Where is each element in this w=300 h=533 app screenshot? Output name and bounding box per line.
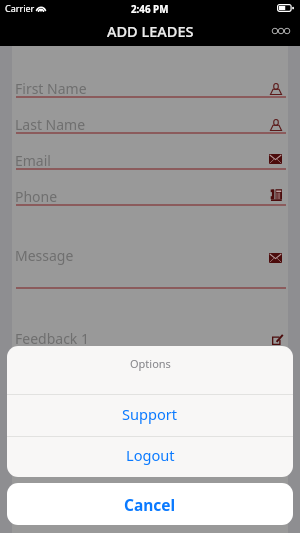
staticText: Carrier (5, 2, 35, 14)
button[interactable]: Logout (7, 437, 293, 477)
staticText: First Name (15, 79, 87, 98)
button[interactable]: Email (12, 147, 288, 171)
button[interactable]: Message (12, 242, 288, 288)
staticText: Cancel (124, 494, 176, 515)
button[interactable]: Support (7, 395, 293, 436)
button[interactable]: Cancel (7, 483, 293, 525)
button[interactable]: Feedback 1 (12, 327, 288, 349)
button[interactable]: Last Name (12, 111, 288, 135)
staticText: Email (15, 151, 51, 170)
staticText: Support (122, 404, 178, 424)
staticText: Logout (126, 445, 175, 465)
staticText: Options (130, 356, 171, 371)
staticText: Last Name (15, 115, 86, 134)
button[interactable]: More options (270, 20, 292, 42)
staticText: Feedback 1 (15, 329, 89, 348)
staticText: ADD LEADES (107, 21, 194, 41)
staticText: 2:46 PM (131, 3, 169, 16)
button[interactable]: First Name (12, 75, 288, 99)
staticText: Phone (15, 187, 58, 206)
staticText: Message (15, 246, 74, 265)
button[interactable]: Phone (12, 183, 288, 207)
